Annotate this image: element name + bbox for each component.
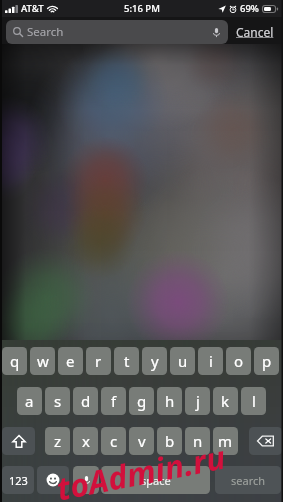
staticText: p xyxy=(262,351,272,371)
staticText: Cancel xyxy=(236,24,274,40)
staticText: v xyxy=(138,431,146,451)
button[interactable]: b xyxy=(157,427,182,455)
staticText: e xyxy=(66,351,75,371)
button[interactable]: Dictation xyxy=(73,466,99,494)
staticText: k xyxy=(221,391,230,411)
button[interactable]: n xyxy=(185,427,210,455)
staticText: x xyxy=(82,431,90,451)
staticText: o xyxy=(234,351,244,371)
staticText: u xyxy=(178,351,188,371)
staticText: l xyxy=(252,391,256,411)
staticText: d xyxy=(81,391,91,411)
button[interactable]: 123 xyxy=(2,466,34,494)
staticText: t xyxy=(124,351,130,371)
button[interactable]: space xyxy=(101,466,210,494)
button[interactable]: s xyxy=(45,387,70,415)
staticText: s xyxy=(54,391,62,411)
staticText: Search xyxy=(27,24,64,40)
button[interactable]: d xyxy=(73,387,98,415)
staticText: 5:16 PM xyxy=(124,2,160,15)
button[interactable]: v xyxy=(129,427,154,455)
staticText: r xyxy=(95,351,102,371)
button[interactable]: l xyxy=(241,387,266,415)
staticText: z xyxy=(54,431,62,451)
staticText: m xyxy=(218,431,233,451)
staticText: g xyxy=(137,391,147,411)
button[interactable]: a xyxy=(17,387,42,415)
button[interactable]: o xyxy=(226,347,251,375)
staticText: c xyxy=(110,431,118,451)
button[interactable]: j xyxy=(185,387,210,415)
staticText: toAdmin.ru xyxy=(53,435,229,502)
other: Voice search xyxy=(210,26,222,38)
button[interactable]: q xyxy=(2,347,27,375)
button[interactable]: m xyxy=(213,427,238,455)
button[interactable]: Cancel xyxy=(236,24,274,40)
button[interactable]: Search xyxy=(6,20,228,44)
button[interactable]: t xyxy=(114,347,139,375)
button[interactable]: Backspace xyxy=(249,427,282,455)
staticText: space xyxy=(141,473,171,488)
button[interactable]: c xyxy=(101,427,126,455)
button[interactable]: Shift xyxy=(2,427,35,455)
button[interactable]: f xyxy=(101,387,126,415)
staticText: i xyxy=(209,351,213,371)
button[interactable]: r xyxy=(86,347,111,375)
button[interactable]: x xyxy=(73,427,98,455)
staticText: 69% xyxy=(240,2,259,15)
staticText: AT&T xyxy=(21,2,44,15)
button[interactable]: w xyxy=(30,347,55,375)
staticText: search xyxy=(231,473,266,488)
button[interactable]: i xyxy=(198,347,223,375)
staticText: j xyxy=(196,391,200,411)
button[interactable]: h xyxy=(157,387,182,415)
button[interactable]: g xyxy=(129,387,154,415)
button[interactable]: Emoji keyboard xyxy=(37,466,69,494)
button[interactable]: search xyxy=(215,466,281,494)
staticText: 123 xyxy=(9,473,28,488)
staticText: q xyxy=(10,351,20,371)
staticText: y xyxy=(151,351,159,371)
staticText: w xyxy=(37,351,49,371)
button[interactable]: p xyxy=(254,347,279,375)
staticText: f xyxy=(111,391,117,411)
staticText: b xyxy=(165,431,175,451)
button[interactable]: u xyxy=(170,347,195,375)
staticText: h xyxy=(165,391,175,411)
button[interactable]: y xyxy=(142,347,167,375)
button[interactable]: z xyxy=(45,427,70,455)
button[interactable]: k xyxy=(213,387,238,415)
staticText: a xyxy=(25,391,34,411)
staticText: n xyxy=(193,431,203,451)
button[interactable]: e xyxy=(58,347,83,375)
